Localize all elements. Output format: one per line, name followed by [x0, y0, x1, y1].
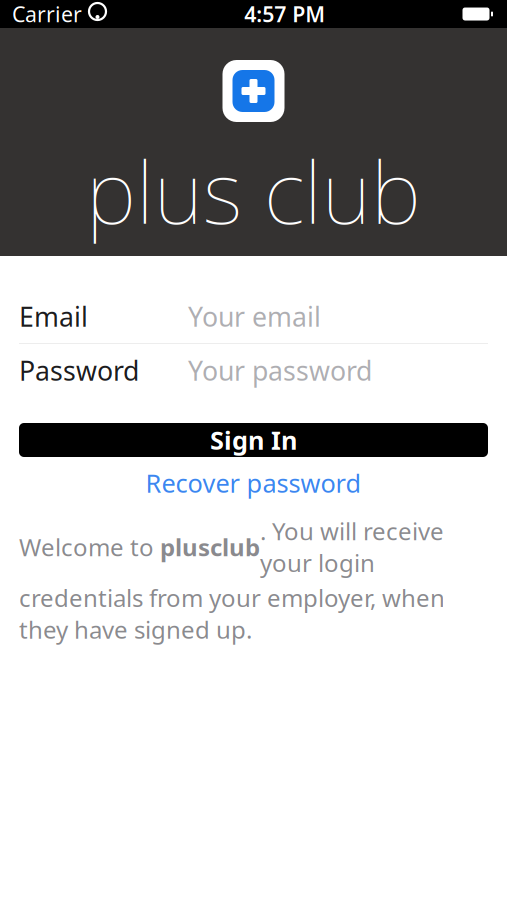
staticText: Carrier — [12, 0, 82, 28]
staticText: Password — [19, 353, 139, 388]
staticText: Your email — [188, 299, 321, 334]
staticText: Welcome to — [19, 531, 160, 563]
staticText: Your password — [188, 353, 372, 388]
button[interactable]: Recover password — [19, 467, 488, 499]
staticText: . You will receive your login — [260, 515, 444, 579]
staticText: plus club — [86, 134, 421, 247]
button[interactable]: Sign In — [19, 423, 488, 457]
staticText: 4:57 PM — [244, 0, 325, 28]
button[interactable]: Password — [19, 344, 488, 397]
staticText: credentials from your employer, when the… — [19, 582, 445, 645]
staticText: Sign In — [210, 423, 297, 457]
button[interactable]: Email — [19, 290, 488, 343]
staticText: Email — [19, 299, 88, 334]
staticText: plusclub — [160, 531, 260, 563]
staticText: Recover password — [145, 466, 361, 500]
